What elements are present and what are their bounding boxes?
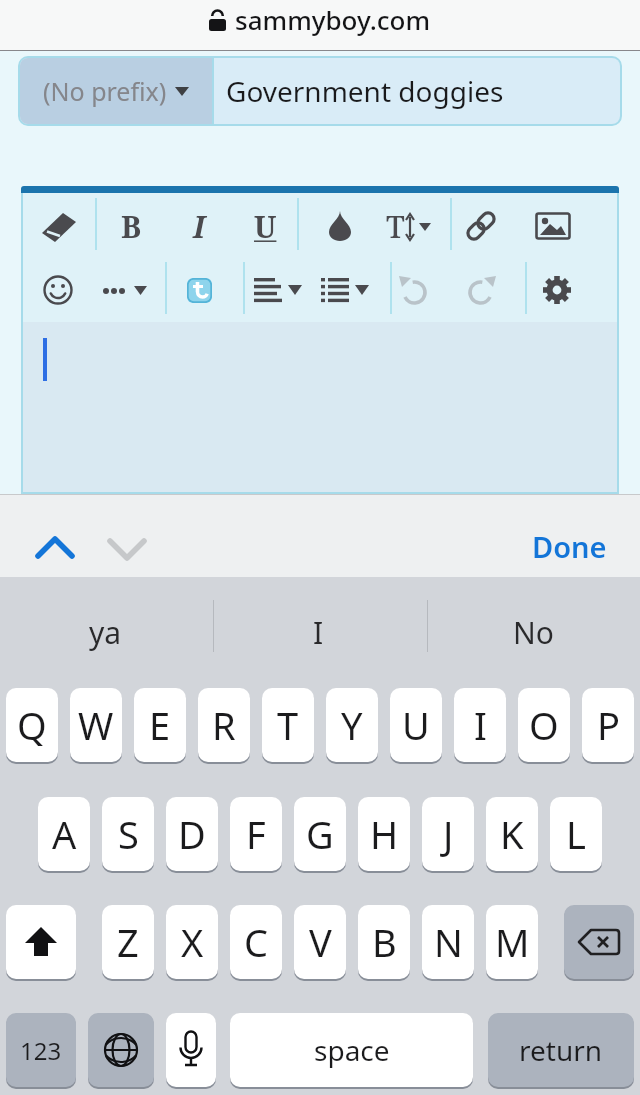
button[interactable]: E bbox=[134, 688, 186, 762]
staticText: O bbox=[529, 699, 559, 751]
button[interactable]: U bbox=[390, 688, 442, 762]
button[interactable]: V bbox=[294, 905, 346, 979]
button[interactable] bbox=[33, 533, 77, 561]
staticText: Y bbox=[341, 699, 363, 751]
button[interactable]: B bbox=[358, 905, 410, 979]
staticText: F bbox=[246, 808, 266, 860]
button[interactable]: P bbox=[582, 688, 634, 762]
button[interactable]: K bbox=[486, 797, 538, 871]
staticText: ya bbox=[89, 612, 122, 653]
button[interactable]: N bbox=[422, 905, 474, 979]
staticText: R bbox=[212, 699, 236, 751]
button[interactable]: (No prefix) bbox=[20, 58, 212, 124]
button[interactable]: ya bbox=[15, 609, 195, 655]
staticText: T bbox=[277, 699, 299, 751]
button[interactable] bbox=[321, 266, 369, 314]
button[interactable]: return bbox=[488, 1013, 634, 1087]
staticText: L bbox=[566, 808, 586, 860]
staticText: S bbox=[118, 808, 139, 860]
button[interactable] bbox=[101, 266, 149, 314]
staticText: K bbox=[500, 808, 524, 860]
button[interactable] bbox=[316, 202, 364, 250]
staticText: D bbox=[178, 808, 206, 860]
staticText: G bbox=[306, 808, 334, 860]
button[interactable] bbox=[21, 322, 619, 494]
button[interactable]: M bbox=[486, 905, 538, 979]
staticText: I bbox=[193, 206, 206, 247]
staticText: space bbox=[314, 1031, 390, 1069]
button[interactable] bbox=[457, 202, 505, 250]
button[interactable]: Government doggies bbox=[214, 58, 620, 124]
button[interactable] bbox=[533, 266, 581, 314]
staticText: B bbox=[372, 916, 397, 968]
button[interactable]: S bbox=[102, 797, 154, 871]
staticText: A bbox=[52, 808, 77, 860]
button[interactable]: X bbox=[166, 905, 218, 979]
button[interactable] bbox=[34, 266, 82, 314]
staticText: Z bbox=[117, 916, 139, 968]
button[interactable] bbox=[175, 266, 223, 314]
button[interactable]: O bbox=[518, 688, 570, 762]
button[interactable] bbox=[88, 1013, 154, 1087]
button[interactable]: 123 bbox=[6, 1013, 76, 1087]
button[interactable]: D bbox=[166, 797, 218, 871]
button[interactable] bbox=[254, 266, 302, 314]
staticText: X bbox=[181, 916, 204, 968]
button[interactable]: J bbox=[422, 797, 474, 871]
button[interactable]: sammyboy.com bbox=[0, 0, 640, 50]
staticText: I bbox=[313, 612, 324, 653]
staticText: H bbox=[370, 808, 399, 860]
staticText: sammyboy.com bbox=[235, 2, 431, 37]
staticText: T bbox=[386, 206, 405, 247]
staticText: No bbox=[513, 612, 554, 653]
button[interactable]: space bbox=[230, 1013, 473, 1087]
button[interactable]: Y bbox=[326, 688, 378, 762]
staticText: U bbox=[254, 206, 277, 247]
button[interactable] bbox=[166, 1013, 216, 1087]
staticText: Done bbox=[532, 527, 607, 566]
button[interactable]: Done bbox=[480, 522, 607, 570]
button[interactable]: C bbox=[230, 905, 282, 979]
button[interactable] bbox=[529, 202, 577, 250]
staticText: W bbox=[78, 699, 114, 751]
staticText: (No prefix) bbox=[43, 74, 167, 108]
staticText: Q bbox=[17, 699, 47, 751]
button[interactable] bbox=[390, 266, 438, 314]
button[interactable]: T bbox=[384, 202, 432, 250]
button[interactable]: F bbox=[230, 797, 282, 871]
staticText: J bbox=[443, 808, 454, 860]
button[interactable]: I bbox=[228, 609, 408, 655]
button[interactable] bbox=[33, 202, 81, 250]
staticText: P bbox=[597, 699, 620, 751]
staticText: Government doggies bbox=[226, 72, 504, 110]
button[interactable] bbox=[6, 905, 76, 979]
staticText: V bbox=[309, 916, 332, 968]
button[interactable]: U bbox=[241, 202, 289, 250]
staticText: C bbox=[244, 916, 269, 968]
button[interactable]: L bbox=[550, 797, 602, 871]
button[interactable]: Z bbox=[102, 905, 154, 979]
staticText: B bbox=[121, 206, 142, 247]
staticText: N bbox=[434, 916, 463, 968]
button[interactable]: R bbox=[198, 688, 250, 762]
button[interactable] bbox=[105, 533, 149, 561]
staticText: 123 bbox=[20, 1034, 62, 1067]
staticText: M bbox=[495, 916, 530, 968]
button[interactable] bbox=[457, 266, 505, 314]
button[interactable] bbox=[564, 905, 634, 979]
button[interactable]: T bbox=[262, 688, 314, 762]
staticText: return bbox=[519, 1031, 603, 1069]
button[interactable]: G bbox=[294, 797, 346, 871]
button[interactable]: I bbox=[175, 202, 223, 250]
staticText: I bbox=[474, 699, 487, 751]
button[interactable]: A bbox=[38, 797, 90, 871]
button[interactable]: No bbox=[443, 609, 623, 655]
button[interactable]: Q bbox=[6, 688, 58, 762]
button[interactable]: B bbox=[107, 202, 155, 250]
button[interactable]: H bbox=[358, 797, 410, 871]
staticText: E bbox=[149, 699, 171, 751]
button[interactable]: I bbox=[454, 688, 506, 762]
staticText: U bbox=[402, 699, 430, 751]
button[interactable]: W bbox=[70, 688, 122, 762]
